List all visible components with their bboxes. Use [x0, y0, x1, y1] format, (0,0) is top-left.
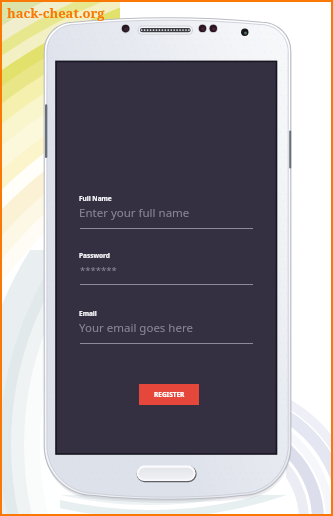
staticText: Enter your full name: [79, 205, 190, 221]
button[interactable]: REGISTER: [139, 384, 199, 405]
staticText: REGISTER: [154, 390, 185, 399]
button[interactable]: Full Name: [78, 194, 253, 234]
staticText: *******: [80, 264, 117, 277]
staticText: Email: [79, 309, 97, 318]
staticText: Your email goes here: [79, 320, 193, 336]
staticText: Full Name: [79, 194, 112, 203]
staticText: Password: [79, 251, 110, 260]
button[interactable]: Password: [78, 251, 253, 291]
staticText: hack-cheat.org: [7, 4, 105, 22]
button[interactable]: Email: [78, 309, 253, 349]
